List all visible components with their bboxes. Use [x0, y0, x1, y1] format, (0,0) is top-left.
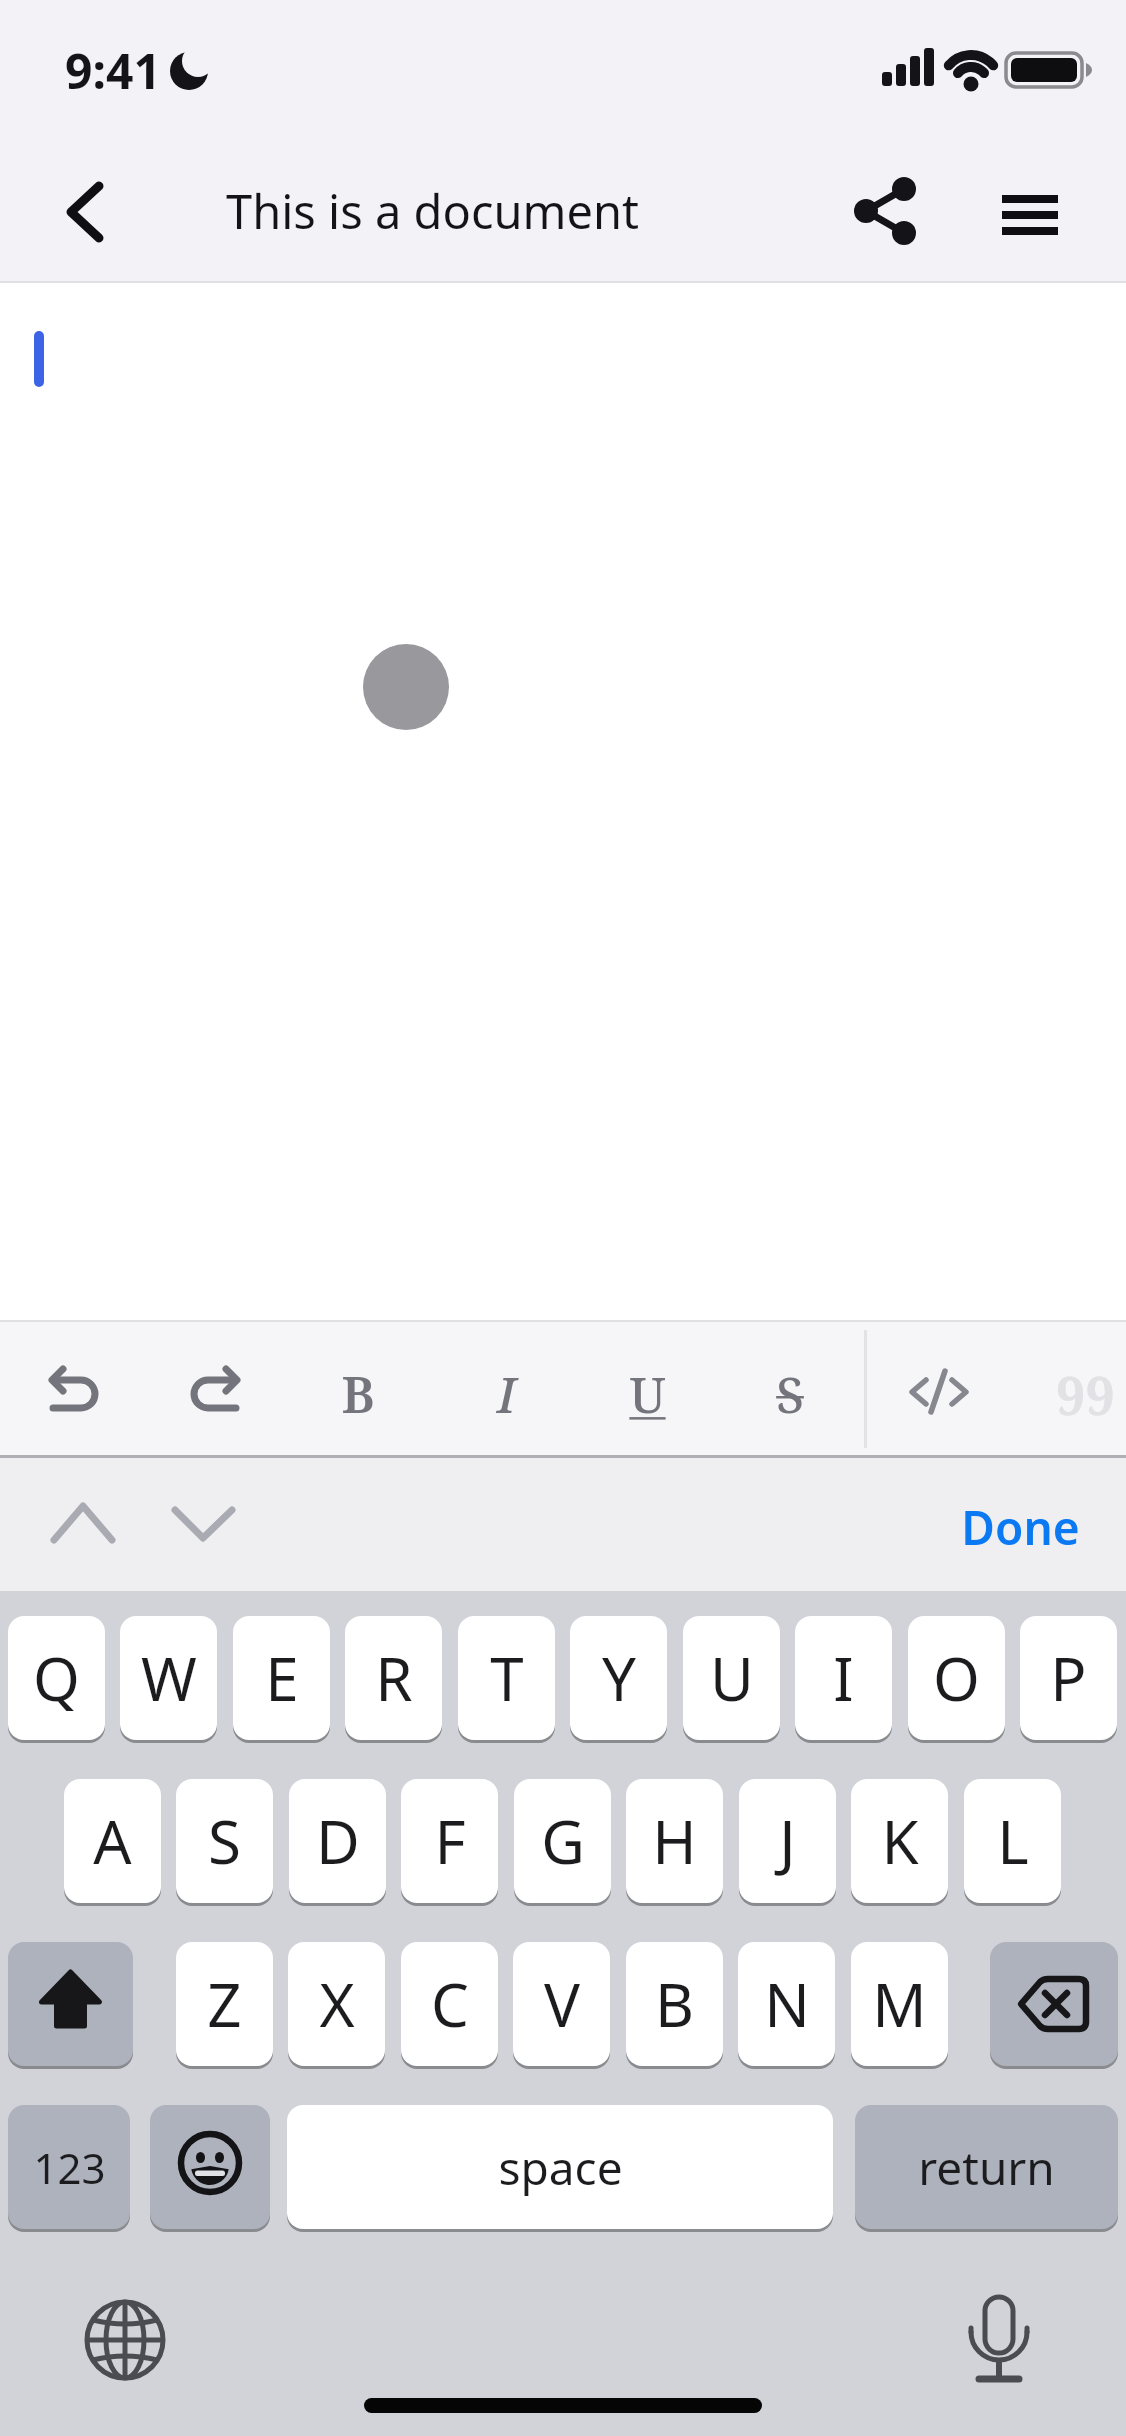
staticText: B [341, 1360, 375, 1428]
staticText: C [431, 1963, 469, 2045]
staticText: N [764, 1963, 810, 2045]
staticText: E [265, 1637, 299, 1719]
staticText: space [498, 2136, 623, 2199]
button[interactable]: Z [176, 1942, 273, 2066]
staticText: 99 [1056, 1359, 1115, 1430]
staticText: 123 [33, 2139, 106, 2196]
button[interactable]: M [851, 1942, 948, 2066]
button[interactable] [990, 175, 1070, 255]
button[interactable]: X [288, 1942, 385, 2066]
button[interactable] [174, 1354, 254, 1434]
staticText: D [316, 1800, 360, 1882]
button[interactable] [145, 1485, 250, 1570]
button[interactable] [8, 1942, 133, 2066]
button[interactable]: R [345, 1616, 442, 1740]
staticText: V [544, 1963, 580, 2045]
button[interactable]: C [401, 1942, 498, 2066]
button[interactable]: O [908, 1616, 1005, 1740]
button[interactable]: P [1020, 1616, 1117, 1740]
button[interactable] [40, 170, 130, 254]
staticText: J [779, 1800, 796, 1882]
button[interactable]: F [401, 1779, 498, 1903]
staticText: O [933, 1637, 980, 1719]
button[interactable]: K [851, 1779, 948, 1903]
staticText: T [490, 1637, 524, 1719]
button[interactable] [75, 2287, 175, 2387]
button[interactable]: U [607, 1354, 687, 1434]
button[interactable]: L [964, 1779, 1061, 1903]
button[interactable]: G [514, 1779, 611, 1903]
button[interactable] [150, 2105, 270, 2229]
button[interactable]: S [176, 1779, 273, 1903]
staticText: This is a document [226, 179, 639, 243]
staticText: I [497, 1360, 516, 1428]
button[interactable]: Done [930, 1485, 1110, 1570]
button[interactable]: H [626, 1779, 723, 1903]
staticText: K [881, 1800, 919, 1882]
staticText: I [833, 1637, 854, 1719]
button[interactable]: Q [8, 1616, 105, 1740]
button[interactable] [35, 1354, 115, 1434]
staticText: Z [207, 1963, 242, 2045]
button[interactable]: return [855, 2105, 1118, 2229]
button[interactable]: T [458, 1616, 555, 1740]
button[interactable]: S [750, 1354, 830, 1434]
staticText: F [434, 1800, 466, 1882]
staticText: U [710, 1637, 754, 1719]
staticText: Q [33, 1637, 80, 1719]
button[interactable]: I [466, 1354, 546, 1434]
staticText: Done [961, 1496, 1080, 1559]
button[interactable]: 123 [8, 2105, 130, 2229]
button[interactable]: B [318, 1354, 398, 1434]
staticText: U [629, 1360, 666, 1428]
button[interactable]: V [513, 1942, 610, 2066]
button[interactable]: D [289, 1779, 386, 1903]
staticText: B [655, 1963, 694, 2045]
button[interactable]: U [683, 1616, 780, 1740]
staticText: S [208, 1800, 241, 1882]
staticText: A [93, 1800, 132, 1882]
button[interactable]: I [795, 1616, 892, 1740]
button[interactable]: N [738, 1942, 835, 2066]
staticText: L [997, 1800, 1029, 1882]
staticText: W [141, 1637, 197, 1719]
button[interactable]: space [287, 2105, 833, 2229]
staticText: X [319, 1963, 355, 2045]
button[interactable]: Y [570, 1616, 667, 1740]
button[interactable] [363, 644, 449, 730]
button[interactable]: 99 [1030, 1354, 1126, 1434]
staticText: return [918, 2136, 1055, 2199]
button[interactable]: A [64, 1779, 161, 1903]
button[interactable] [897, 1354, 977, 1434]
button[interactable] [840, 166, 932, 258]
button[interactable]: E [233, 1616, 330, 1740]
button[interactable]: J [739, 1779, 836, 1903]
staticText: G [541, 1800, 585, 1882]
staticText: 9:41 [65, 38, 161, 102]
staticText: S [776, 1360, 804, 1428]
staticText: M [872, 1963, 927, 2045]
button[interactable] [30, 1485, 135, 1570]
button[interactable] [950, 2280, 1050, 2390]
staticText: P [1050, 1637, 1087, 1719]
staticText: R [375, 1637, 413, 1719]
staticText: H [652, 1800, 697, 1882]
staticText: Y [602, 1637, 636, 1719]
button[interactable] [990, 1942, 1118, 2066]
button[interactable]: B [626, 1942, 723, 2066]
button[interactable]: W [120, 1616, 217, 1740]
